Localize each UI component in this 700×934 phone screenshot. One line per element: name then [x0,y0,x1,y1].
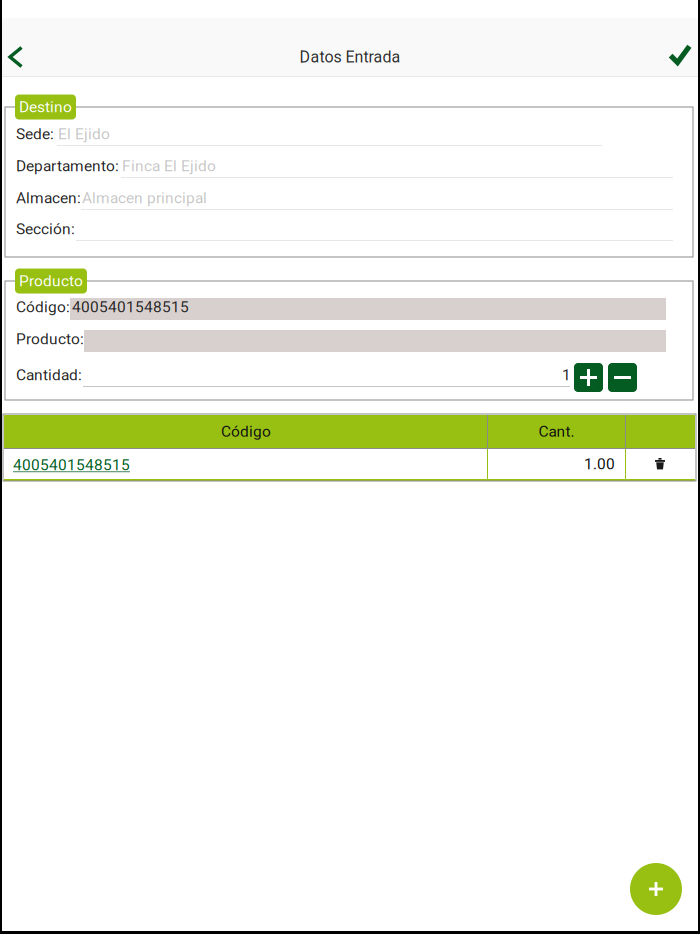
staticText: Sección: [16,220,75,238]
staticText: Código: [16,298,70,316]
staticText: Almacen: [16,189,81,207]
button[interactable]: Delete row [626,449,694,479]
button[interactable]: Save [652,25,700,83]
staticText: Producto: [16,330,84,348]
button[interactable]: Decrease quantity [608,363,637,392]
staticText: Datos Entrada [299,48,400,66]
staticText: Finca El Ejido [122,157,216,175]
staticText: 4005401548515 [13,456,130,474]
staticText: 4005401548515 [72,298,189,316]
staticText: Sede: [16,125,54,143]
staticText: Cantidad: [16,366,82,384]
staticText: Código [221,422,271,440]
staticText: Producto [19,272,83,290]
staticText: Departamento: [16,157,119,175]
staticText: El Ejido [58,125,110,143]
button[interactable]: Back [2,28,46,86]
button[interactable]: Increase quantity [574,363,603,392]
button[interactable]: Add [630,863,682,915]
staticText: 1.00 [584,455,615,473]
staticText: Destino [19,98,72,116]
staticText: 1 [562,366,571,384]
staticText: Almacen principal [82,189,207,207]
button[interactable]: 4005401548515 [4,449,488,479]
staticText: Cant. [538,422,574,440]
